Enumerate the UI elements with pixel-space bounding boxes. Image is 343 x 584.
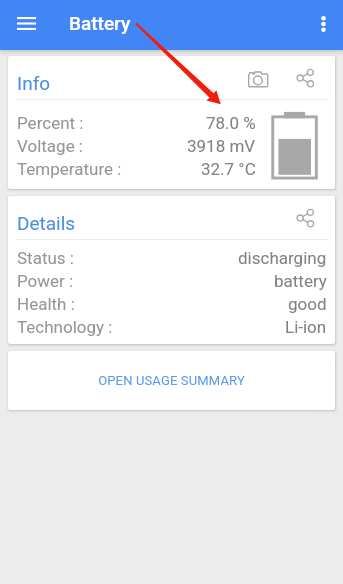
button[interactable]: OPEN USAGE SUMMARY <box>8 351 335 410</box>
staticText: discharging <box>238 248 327 268</box>
staticText: Li-ion <box>285 317 327 337</box>
staticText: Details <box>17 212 76 234</box>
button[interactable]: More options <box>305 6 341 42</box>
staticText: Percent : <box>17 113 84 133</box>
staticText: Power : <box>17 271 74 291</box>
button[interactable]: Screenshot <box>244 63 273 93</box>
button[interactable]: Share <box>291 203 315 233</box>
staticText: Voltage : <box>17 136 83 156</box>
staticText: Health : <box>17 294 75 314</box>
staticText: Status : <box>17 248 74 268</box>
staticText: battery <box>274 271 327 291</box>
button[interactable]: Navigation menu <box>8 5 44 41</box>
button[interactable]: Share <box>291 63 315 93</box>
staticText: 3918 mV <box>187 136 256 156</box>
staticText: Temperature : <box>17 159 122 179</box>
staticText: Battery <box>69 12 131 34</box>
staticText: OPEN USAGE SUMMARY <box>98 373 245 388</box>
staticText: Technology : <box>17 317 113 337</box>
staticText: good <box>288 294 327 314</box>
staticText: 78.0 % <box>206 113 256 133</box>
staticText: Info <box>17 72 51 94</box>
staticText: 32.7 °C <box>201 159 256 179</box>
